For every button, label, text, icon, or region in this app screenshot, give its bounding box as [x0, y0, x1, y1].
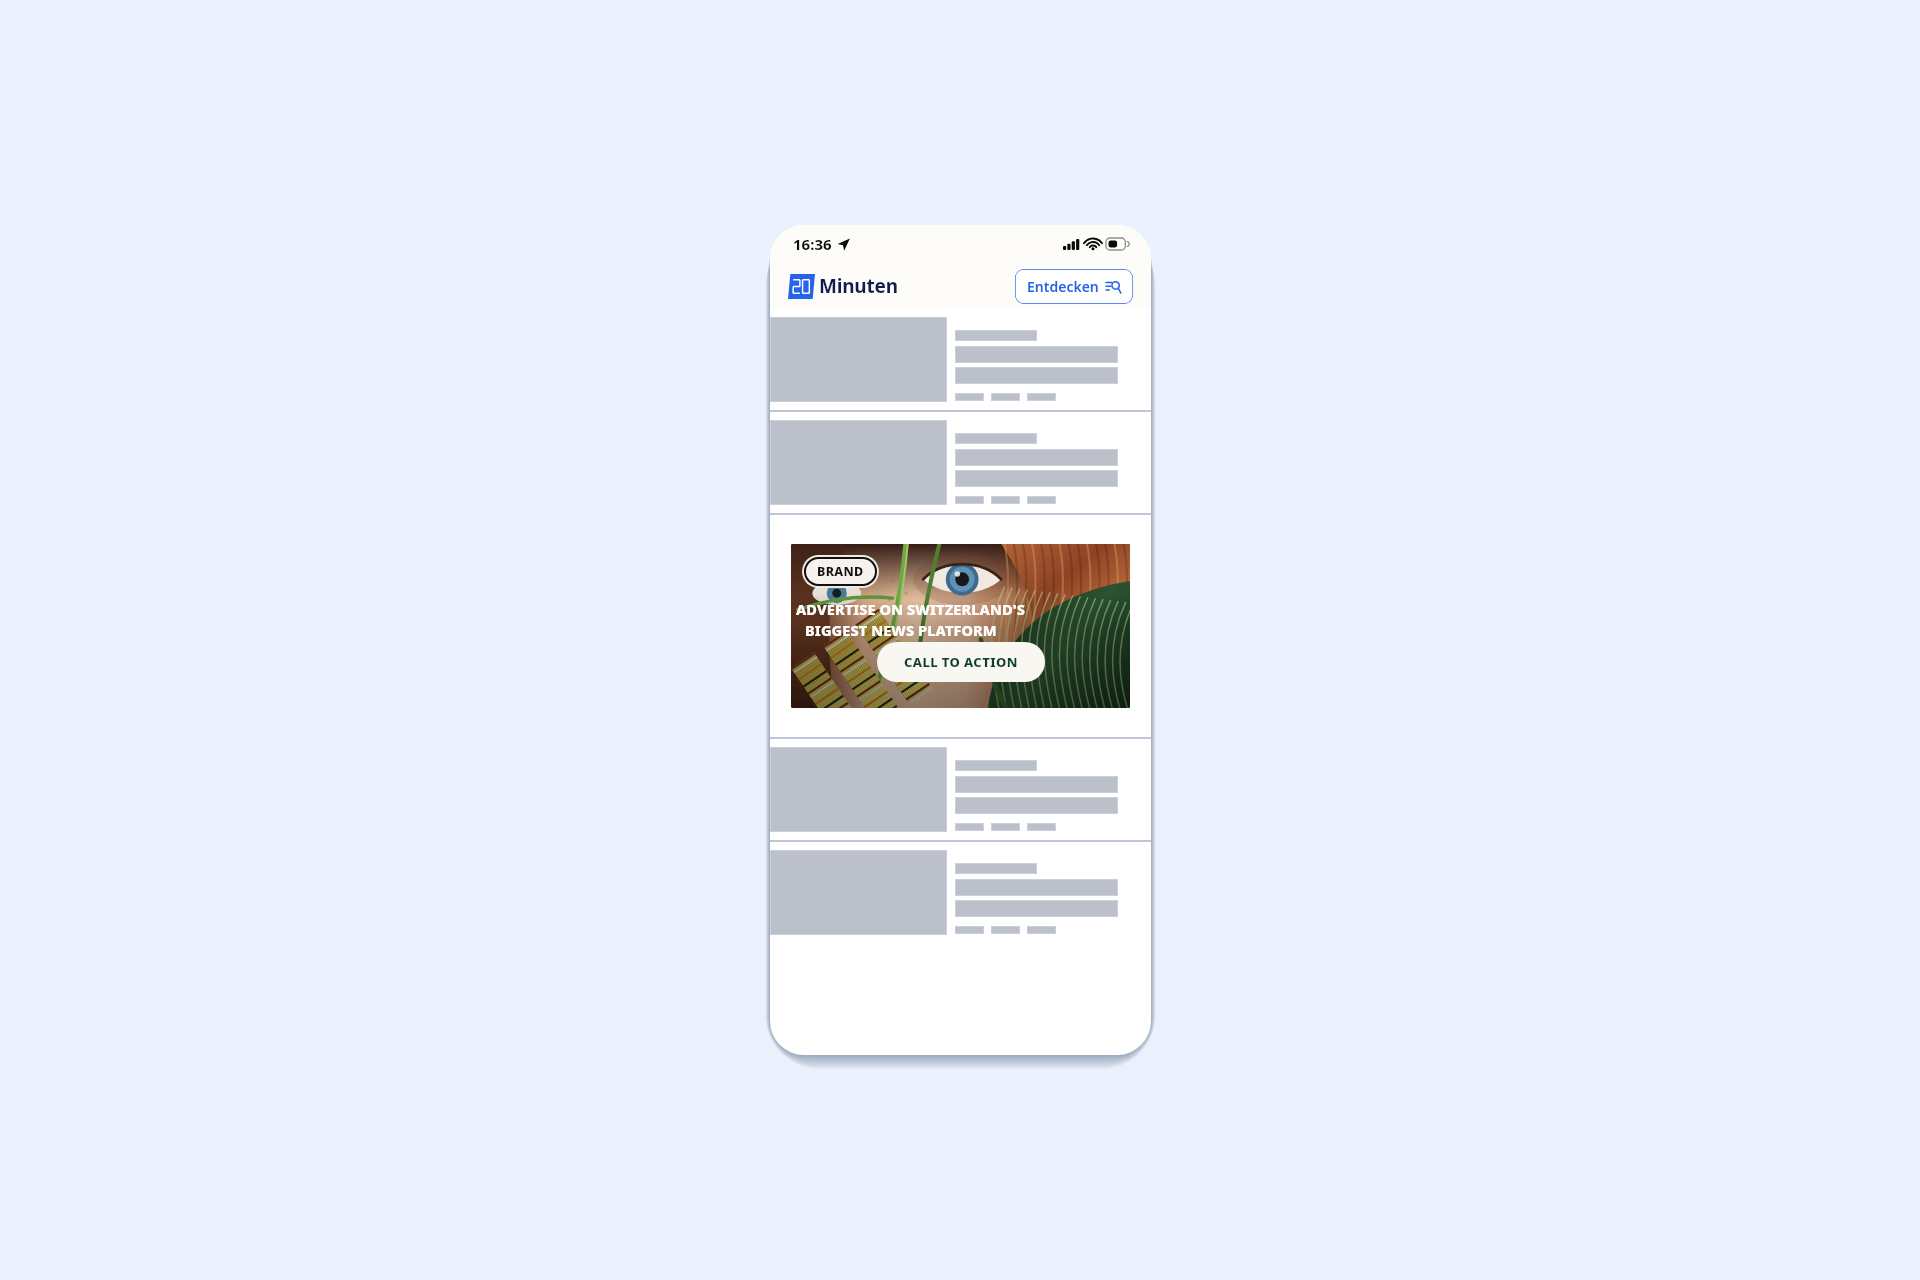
button[interactable]: Entdecken: [1015, 269, 1133, 304]
staticText: CALL TO ACTION: [904, 653, 1018, 671]
other: Suchen: [1106, 279, 1121, 294]
staticText: BIGGEST NEWS PLATFORM: [805, 620, 997, 640]
button[interactable]: Minuten: [788, 273, 898, 299]
staticText: 16:36: [793, 234, 832, 254]
button[interactable]: CALL TO ACTION: [877, 642, 1045, 682]
button[interactable]: [770, 309, 1151, 410]
button[interactable]: [770, 842, 1151, 943]
button[interactable]: BRAND: [770, 515, 1151, 737]
button[interactable]: [770, 739, 1151, 840]
button[interactable]: [770, 412, 1151, 513]
staticText: Entdecken: [1027, 277, 1099, 296]
staticText: ADVERTISE ON SWITZERLAND'S: [796, 599, 1026, 619]
staticText: Minuten: [819, 273, 898, 299]
staticText: BRAND: [817, 563, 864, 580]
button[interactable]: BRAND: [806, 559, 875, 584]
